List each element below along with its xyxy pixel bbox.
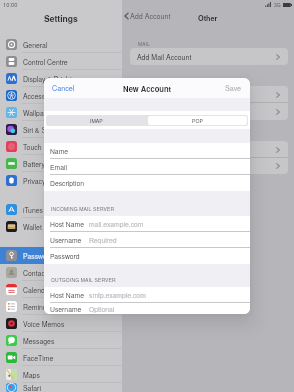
button[interactable]: Display & Brightness: [0, 70, 122, 87]
staticText: smtp.example.com: [89, 290, 146, 300]
button[interactable]: Calendar: [0, 281, 122, 298]
button[interactable]: [130, 86, 288, 103]
button[interactable]: Safari: [0, 383, 122, 392]
staticText: Host Name: [50, 290, 84, 300]
staticText: Wallet & Apple Pay: [23, 222, 82, 232]
staticText: Maps: [23, 370, 40, 380]
staticText: POP: [192, 117, 203, 124]
staticText: New Account: [123, 83, 172, 94]
staticText: Email: [50, 162, 67, 172]
button[interactable]: IMAP: [46, 115, 147, 126]
button[interactable]: Contacts: [0, 264, 122, 281]
button[interactable]: Save: [217, 79, 250, 97]
staticText: Username: [50, 304, 82, 314]
staticText: Cancel: [52, 83, 75, 93]
button[interactable]: Password: [44, 248, 250, 264]
button[interactable]: Username: [44, 303, 250, 314]
staticText: Settings: [44, 12, 78, 24]
staticText: FaceTime: [23, 353, 54, 363]
button[interactable]: Add Mail Account: [130, 48, 288, 65]
button[interactable]: Add Account: [124, 11, 171, 21]
staticText: Siri & Search: [23, 125, 64, 135]
button[interactable]: Control Centre: [0, 53, 122, 70]
staticText: IMAP: [90, 117, 103, 124]
staticText: 10:00: [3, 0, 18, 8]
staticText: Safari: [23, 383, 41, 392]
staticText: OUTGOING MAIL SERVER: [51, 276, 116, 283]
staticText: mail.example.com: [89, 219, 144, 229]
staticText: INCOMING MAIL SERVER: [51, 205, 115, 212]
button[interactable]: iTunes & App Store: [0, 201, 122, 218]
staticText: General: [23, 40, 48, 50]
staticText: Description: [50, 178, 84, 188]
button[interactable]: Privacy: [0, 172, 122, 189]
staticText: Other: [198, 13, 218, 23]
staticText: Control Centre: [23, 57, 68, 67]
button[interactable]: [130, 158, 288, 174]
button[interactable]: Wallpaper: [0, 104, 122, 121]
button[interactable]: Siri & Search: [0, 121, 122, 138]
staticText: Calendar: [23, 285, 51, 295]
button[interactable]: Email: [44, 159, 250, 175]
staticText: Add Mail Account: [137, 52, 192, 62]
staticText: Host Name: [50, 219, 84, 229]
staticText: Battery: [23, 159, 45, 169]
staticText: Optional: [89, 304, 115, 314]
staticText: Name: [50, 146, 69, 156]
button[interactable]: Description: [44, 175, 250, 191]
staticText: Messages: [23, 336, 55, 346]
staticText: 3G: [274, 1, 281, 8]
button[interactable]: Host Name: [44, 216, 250, 232]
button[interactable]: Wallet & Apple Pay: [0, 218, 122, 235]
button[interactable]: Touch ID & Passcode: [0, 138, 122, 155]
button[interactable]: Battery: [0, 155, 122, 172]
button[interactable]: Username: [44, 232, 250, 248]
button[interactable]: Messages: [0, 332, 122, 349]
staticText: Passwords: [23, 251, 57, 261]
button[interactable]: General: [0, 36, 122, 53]
button[interactable]: Maps: [0, 366, 122, 383]
staticText: Required: [89, 235, 117, 245]
staticText: Accessibility: [23, 91, 61, 101]
staticText: Privacy: [23, 176, 46, 186]
staticText: Password: [50, 251, 80, 261]
staticText: Display & Brightness: [23, 74, 87, 84]
button[interactable]: Cancel: [44, 79, 83, 97]
staticText: Save: [225, 83, 242, 93]
staticText: Touch ID & Passcode: [23, 142, 89, 152]
staticText: Contacts: [23, 268, 51, 278]
staticText: Add Account: [130, 11, 171, 21]
button[interactable]: Voice Memos: [0, 315, 122, 332]
staticText: Wallpaper: [23, 108, 54, 118]
staticText: MAIL: [138, 40, 150, 47]
button[interactable]: [130, 141, 288, 158]
button[interactable]: FaceTime: [0, 349, 122, 366]
staticText: Reminders: [23, 302, 57, 312]
button[interactable]: Accessibility: [0, 87, 122, 104]
staticText: Voice Memos: [23, 319, 65, 329]
button[interactable]: Passwords: [0, 247, 122, 264]
button[interactable]: Name: [44, 143, 250, 159]
button[interactable]: POP: [148, 116, 247, 125]
button[interactable]: [130, 103, 288, 120]
button[interactable]: Host Name: [44, 287, 250, 303]
staticText: Username: [50, 235, 82, 245]
staticText: iTunes & App Store: [23, 205, 82, 215]
button[interactable]: Reminders: [0, 298, 122, 315]
